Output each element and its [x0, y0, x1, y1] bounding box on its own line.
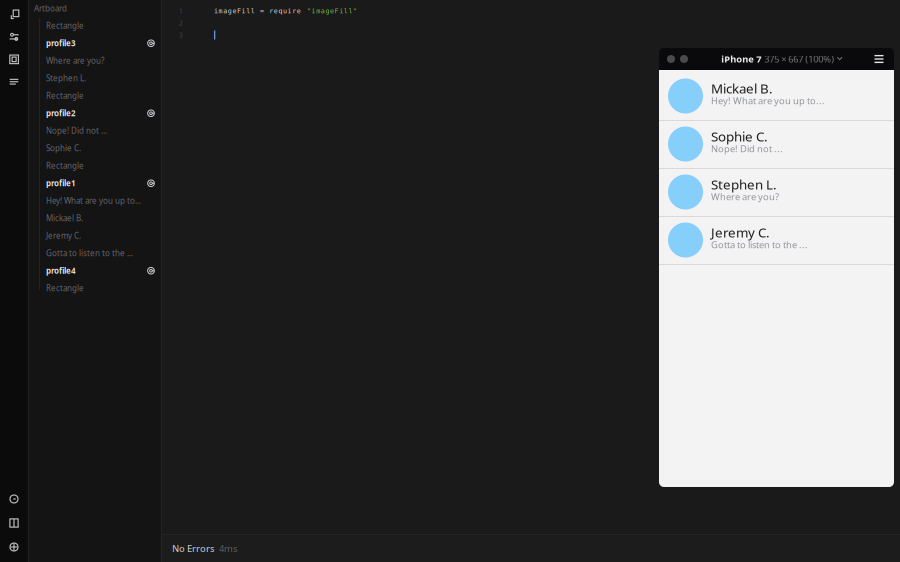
button[interactable]: Nope! Did not ... — [29, 122, 161, 139]
button[interactable]: Mickael B. — [29, 209, 161, 227]
staticText: "imageFill" — [307, 7, 357, 15]
button[interactable]: Artboard — [29, 0, 161, 17]
staticText: Gotta to listen to the ... — [46, 248, 133, 258]
button[interactable]: Rectangle — [29, 157, 161, 174]
button[interactable]: Split view — [0, 511, 28, 535]
staticText: 2 — [179, 19, 183, 27]
button[interactable]: profile2 — [29, 104, 161, 122]
button[interactable]: Hey! What are you up to... — [29, 192, 161, 209]
staticText: Nope! Did not ... — [46, 125, 107, 136]
button[interactable]: profile4 — [29, 262, 161, 279]
button[interactable]: Inspector — [0, 25, 28, 48]
staticText: Rectangle — [46, 90, 84, 101]
staticText: Stephen L. — [711, 175, 777, 193]
button[interactable]: Preview — [0, 48, 28, 70]
staticText: Stephen L. — [46, 73, 86, 83]
staticText: Where are you? — [711, 190, 779, 203]
staticText: Gotta to listen to the ... — [711, 238, 808, 251]
staticText: Jeremy C. — [46, 230, 81, 241]
staticText: 375 × 667 (100%) — [764, 53, 834, 65]
button[interactable]: Mickael B. — [659, 73, 894, 121]
staticText: Hey! What are you up to... — [711, 94, 825, 107]
staticText: imageFill = require — [214, 7, 305, 15]
staticText: Mickael B. — [711, 79, 773, 97]
staticText: profile2 — [46, 108, 76, 118]
staticText: 3 — [179, 31, 183, 39]
button[interactable]: Sophie C. — [29, 139, 161, 157]
staticText: profile1 — [46, 178, 76, 188]
staticText: iPhone 7 — [721, 53, 761, 65]
staticText: 1 — [179, 7, 183, 15]
staticText: Sophie C. — [46, 143, 81, 153]
staticText: Rectangle — [46, 20, 84, 31]
staticText: Nope! Did not ... — [711, 142, 783, 155]
staticText: Hey! What are you up to... — [46, 195, 141, 206]
button[interactable]: Stephen L. — [29, 69, 161, 87]
button[interactable]: Menu — [864, 48, 894, 70]
staticText: Rectangle — [46, 283, 84, 293]
button[interactable]: Rectangle — [29, 17, 161, 34]
staticText: Rectangle — [46, 160, 84, 171]
staticText: profile3 — [46, 38, 76, 48]
staticText: Mickael B. — [46, 213, 83, 223]
button[interactable]: profile1 — [29, 174, 161, 192]
button[interactable]: No Errors — [162, 535, 900, 562]
button[interactable]: Gotta to listen to the ... — [29, 244, 161, 262]
staticText: Sophie C. — [711, 127, 768, 145]
staticText: Where are you? — [46, 55, 104, 66]
button[interactable]: Rectangle — [29, 279, 161, 297]
button[interactable]: Stephen L. — [659, 169, 894, 217]
button[interactable]: Help — [0, 487, 28, 511]
button[interactable]: Artboards — [0, 3, 28, 25]
button[interactable]: Where are you? — [29, 52, 161, 69]
staticText: No Errors — [172, 542, 215, 555]
button[interactable]: Sophie C. — [659, 121, 894, 169]
button[interactable]: Layers — [0, 70, 28, 93]
button[interactable]: Rectangle — [29, 87, 161, 104]
button[interactable]: profile3 — [29, 34, 161, 52]
staticText: Artboard — [34, 3, 67, 14]
staticText: 4ms — [219, 542, 237, 555]
staticText: profile4 — [46, 265, 76, 276]
button[interactable]: Jeremy C. — [659, 217, 894, 265]
staticText: Jeremy C. — [711, 223, 770, 241]
button[interactable]: Jeremy C. — [29, 227, 161, 244]
button[interactable]: Add — [0, 535, 28, 559]
